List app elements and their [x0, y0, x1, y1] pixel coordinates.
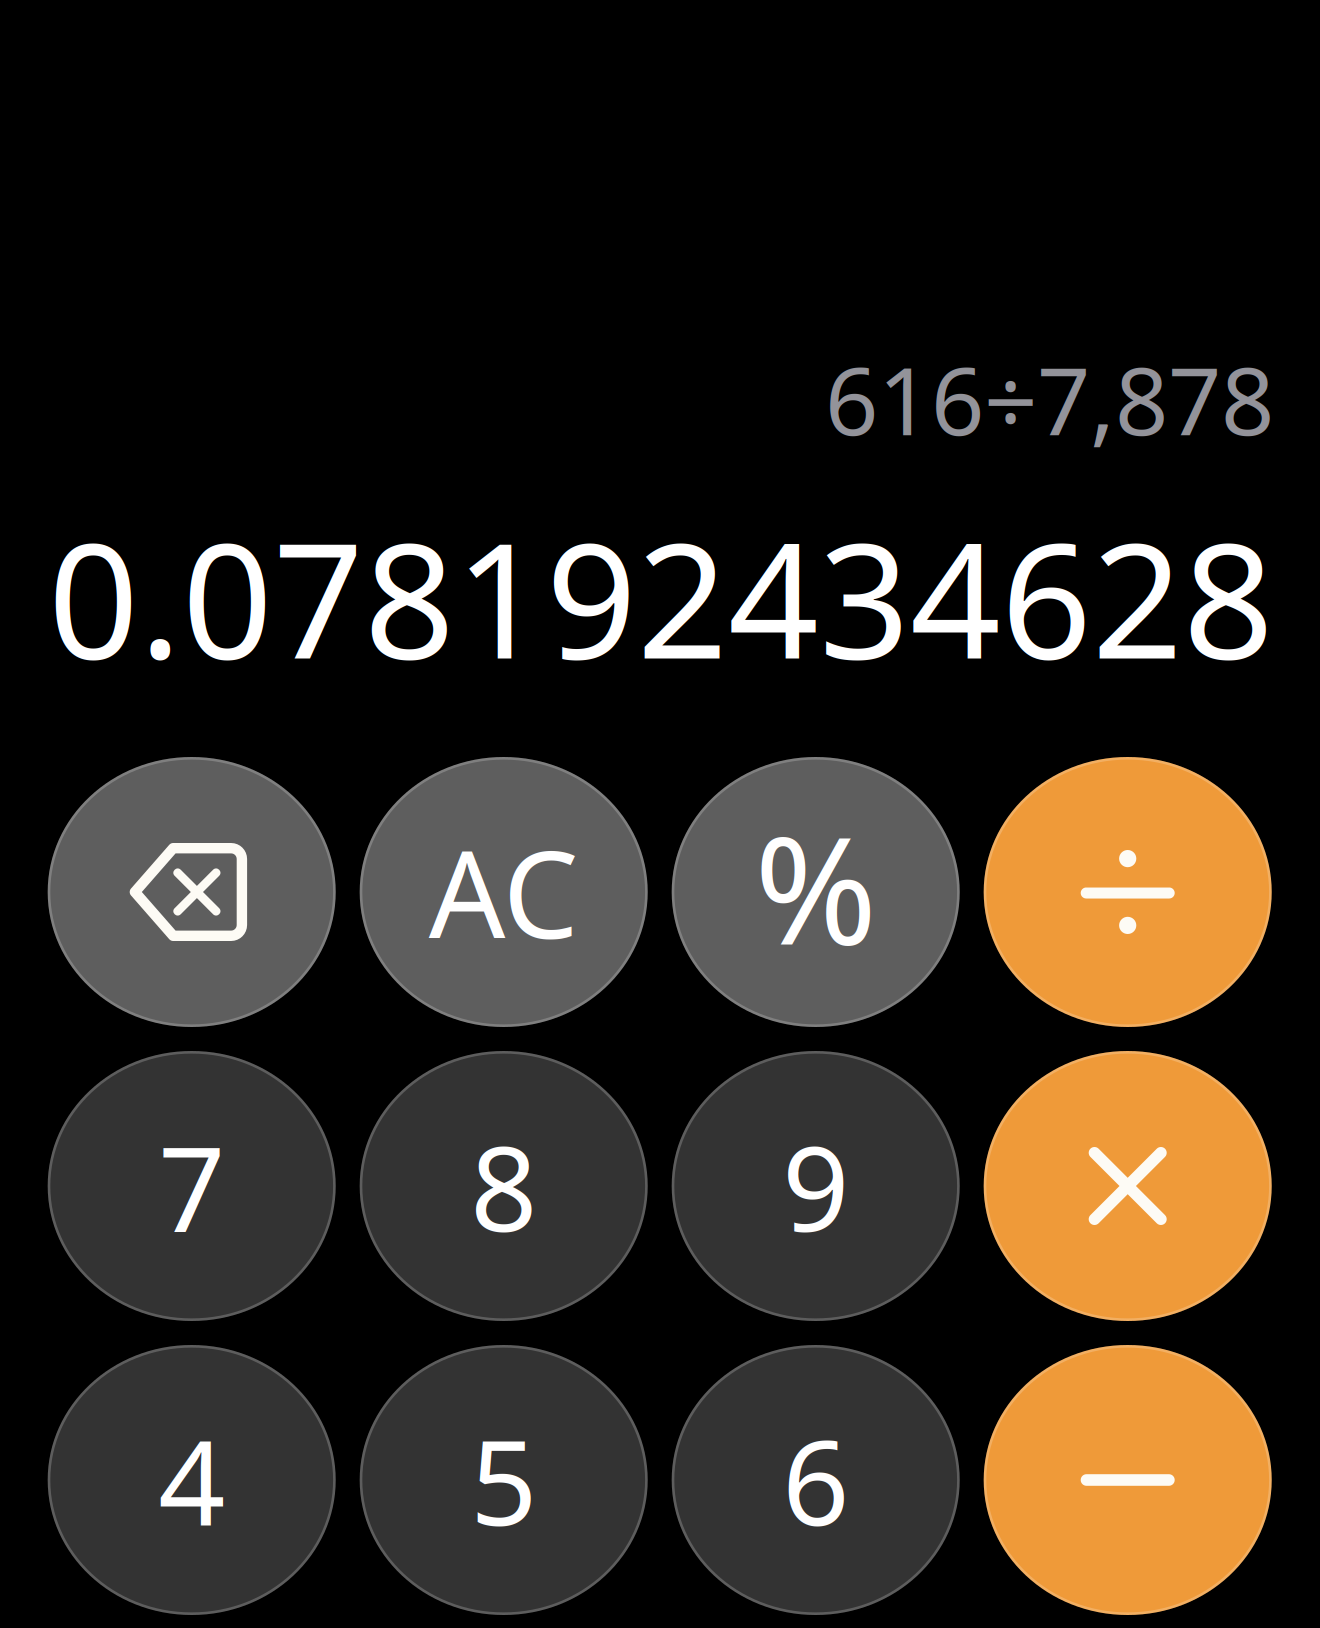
button[interactable]: Multiply	[984, 1051, 1272, 1321]
staticText: 5	[470, 1402, 537, 1558]
staticText: AC	[429, 812, 579, 972]
staticText: 616÷7,878	[825, 337, 1274, 461]
staticText: 7	[158, 1108, 225, 1264]
staticText: 0.078192434628	[48, 492, 1274, 702]
button[interactable]: Divide	[984, 757, 1272, 1027]
staticText: 8	[470, 1108, 537, 1264]
button[interactable]: 6	[672, 1345, 960, 1615]
staticText: 6	[782, 1402, 849, 1558]
button[interactable]: 4	[48, 1345, 336, 1615]
button[interactable]: 5	[360, 1345, 648, 1615]
button[interactable]: Percent	[672, 757, 960, 1027]
staticText: %	[754, 789, 877, 986]
staticText: 4	[158, 1402, 225, 1558]
button[interactable]: 9	[672, 1051, 960, 1321]
button[interactable]: 8	[360, 1051, 648, 1321]
button[interactable]: Minus	[984, 1345, 1272, 1615]
button[interactable]: Delete	[48, 757, 336, 1027]
staticText: 9	[782, 1108, 849, 1264]
button[interactable]: All clear	[360, 757, 648, 1027]
button[interactable]: 7	[48, 1051, 336, 1321]
